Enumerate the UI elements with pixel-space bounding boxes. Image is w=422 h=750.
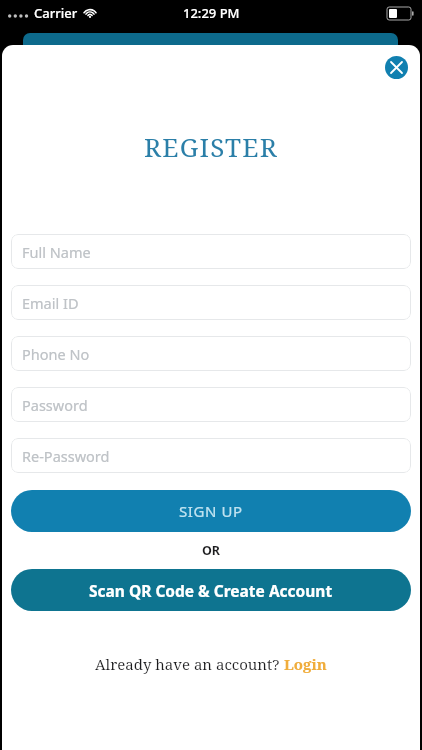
staticText: Already have an account? (95, 654, 284, 674)
staticText: OR (11, 542, 411, 559)
button[interactable]: Scan QR Code & Create Account (11, 569, 411, 611)
staticText: Login (284, 654, 327, 674)
button[interactable]: SIGN UP (11, 490, 411, 532)
staticText: Password (22, 395, 88, 415)
staticText: Scan QR Code & Create Account (89, 580, 333, 601)
button[interactable]: Full Name (11, 234, 411, 269)
staticText: Full Name (22, 242, 91, 262)
staticText: 12:29 PM (183, 4, 240, 22)
staticText: Phone No (22, 344, 90, 364)
staticText: SIGN UP (179, 501, 243, 521)
button[interactable]: Phone No (11, 336, 411, 371)
staticText: Email ID (22, 293, 79, 313)
button[interactable]: Re-Password (11, 438, 411, 473)
button[interactable]: Login (284, 654, 327, 674)
staticText: REGISTER (2, 129, 420, 164)
button[interactable]: Email ID (11, 285, 411, 320)
staticText: Carrier (34, 4, 78, 22)
button[interactable]: Password (11, 387, 411, 422)
staticText: Re-Password (22, 446, 110, 466)
button[interactable]: Close (385, 56, 408, 79)
